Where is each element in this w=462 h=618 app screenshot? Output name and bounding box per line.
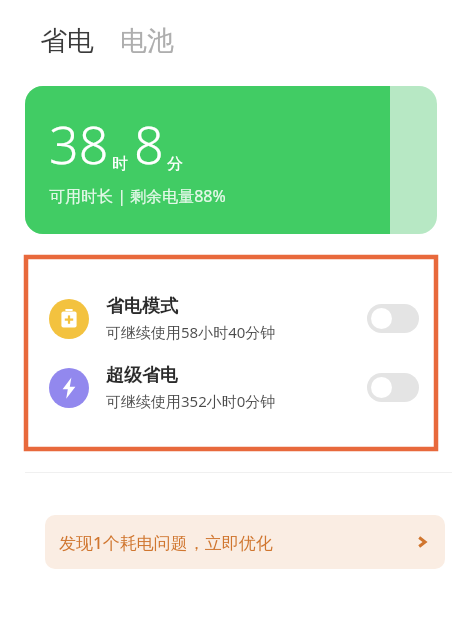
staticText: 时 [112, 154, 128, 174]
button[interactable]: 省电 [38, 20, 96, 62]
staticText: 省电模式 [106, 295, 178, 318]
staticText: 电池 [120, 24, 174, 58]
button[interactable]: 省电模式 开关 [367, 304, 419, 333]
button[interactable]: 发现1个耗电问题，立即优化 [45, 515, 445, 569]
staticText: 可继续使用352小时0分钟 [106, 391, 276, 411]
staticText: 可继续使用58小时40分钟 [106, 322, 276, 342]
staticText: 8 [134, 108, 164, 179]
button[interactable]: 38 [25, 86, 437, 234]
staticText: 发现1个耗电问题，立即优化 [59, 531, 273, 554]
button[interactable]: 省电模式 [29, 295, 433, 342]
staticText: 38 [49, 108, 109, 179]
staticText: 省电 [40, 24, 94, 58]
staticText: 分 [167, 154, 183, 174]
button[interactable]: 超级省电 开关 [367, 373, 419, 402]
button[interactable]: 超级省电 [29, 364, 433, 411]
staticText: 可用时长 | 剩余电量88% [49, 185, 226, 207]
staticText: 超级省电 [106, 364, 178, 387]
button[interactable]: 电池 [118, 20, 176, 62]
